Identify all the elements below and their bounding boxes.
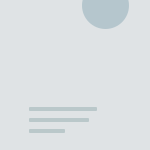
button[interactable]: Profile photo placeholder (82, 0, 129, 29)
